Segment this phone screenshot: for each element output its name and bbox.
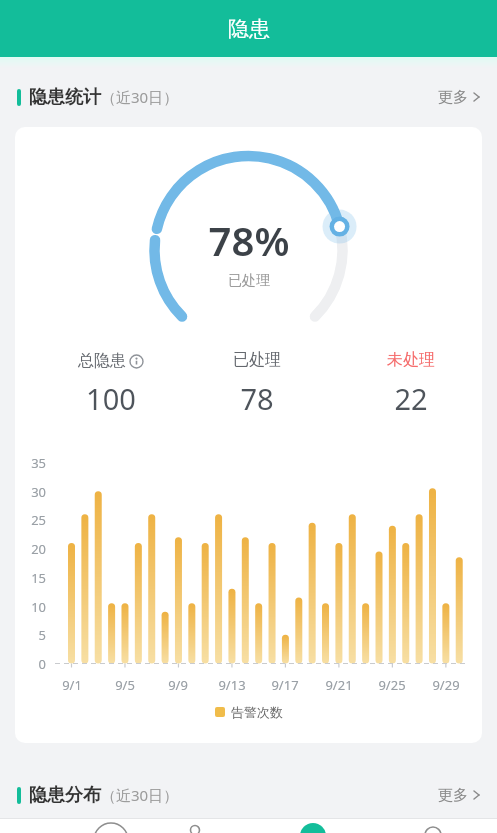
staticText: 隐患统计 bbox=[29, 86, 101, 109]
staticText: 告警次数 bbox=[231, 704, 283, 720]
staticText: 15 bbox=[16, 569, 46, 586]
staticText: 9/17 bbox=[263, 676, 307, 693]
staticText: 5 bbox=[16, 626, 46, 643]
staticText: 78% bbox=[149, 213, 349, 267]
staticText: 22 bbox=[351, 379, 471, 415]
staticText: 9/29 bbox=[424, 676, 468, 693]
staticText: 0 bbox=[16, 655, 46, 672]
staticText: 9/1 bbox=[50, 676, 94, 693]
staticText: 100 bbox=[51, 379, 171, 415]
staticText: 已处理 bbox=[189, 272, 309, 290]
staticText: 9/9 bbox=[156, 676, 200, 693]
staticText: 9/21 bbox=[317, 676, 361, 693]
staticText: 30 bbox=[16, 483, 46, 500]
staticText: 已处理 bbox=[197, 350, 317, 370]
staticText: （近30日） bbox=[101, 785, 179, 805]
staticText: 20 bbox=[16, 540, 46, 557]
staticText: 9/25 bbox=[370, 676, 414, 693]
staticText: 总隐患 bbox=[78, 351, 126, 371]
staticText: 10 bbox=[16, 598, 46, 615]
staticText: 9/13 bbox=[210, 676, 254, 693]
staticText: 78 bbox=[197, 379, 317, 415]
staticText: （近30日） bbox=[101, 87, 179, 107]
staticText: 35 bbox=[16, 454, 46, 471]
staticText: 25 bbox=[16, 511, 46, 528]
staticText: 9/5 bbox=[103, 676, 147, 693]
staticText: 更多 bbox=[438, 88, 468, 107]
staticText: 未处理 bbox=[351, 350, 471, 370]
staticText: 隐患分布 bbox=[29, 784, 101, 807]
staticText: 更多 bbox=[438, 786, 468, 805]
staticText: 隐患 bbox=[228, 16, 270, 42]
